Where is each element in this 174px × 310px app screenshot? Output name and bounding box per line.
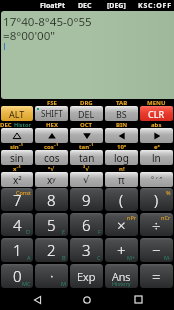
staticText: 17°40-8°45-0°55 [3,14,92,30]
button[interactable]: ÷ [140,213,173,236]
button[interactable]: + [105,238,138,262]
button[interactable]: Ans [105,264,138,288]
staticText: M+ [127,254,136,261]
staticText: 7 [13,190,22,210]
staticText: √ [83,174,90,186]
staticText: 1 [13,240,22,260]
button[interactable]: Exp [70,264,103,288]
staticText: C [97,254,101,261]
staticText: cos [44,151,60,165]
staticText: E [62,228,66,235]
button[interactable]: xʸ [35,172,68,187]
button[interactable]: Move left [105,128,138,143]
button[interactable]: 6 [70,213,103,236]
staticText: % [166,189,171,196]
button[interactable]: 8 [35,188,68,211]
button[interactable]: 7 [1,188,33,211]
button[interactable]: π [105,172,138,187]
button[interactable]: Cursor up [1,128,33,143]
staticText: + [117,240,126,260]
button[interactable]: cos [35,150,68,165]
staticText: 5 [47,215,56,235]
staticText: n! [119,165,125,172]
staticText: KSC:OFF [138,1,172,11]
staticText: M [61,280,66,287]
staticText: BS [116,108,127,120]
button[interactable]: ° ′ ″ [140,172,173,187]
staticText: 4 [13,215,22,235]
staticText: 0 [13,266,22,286]
button[interactable]: 2 [35,238,68,262]
button[interactable]: 4 [1,213,33,236]
staticText: tan [79,151,95,165]
button[interactable]: log [105,150,138,165]
staticText: x² [13,173,22,187]
button[interactable]: ALT [1,106,33,121]
staticText: 3 [82,240,91,260]
staticText: HEX [46,121,58,128]
staticText: MC [22,280,31,287]
staticText: ° ′ ″ [151,175,163,185]
staticText: xʸ [47,173,56,187]
button[interactable]: sin [1,150,33,165]
button[interactable]: ln [140,150,173,165]
button[interactable]: Home [73,289,101,310]
staticText: ( [119,190,124,210]
staticText: = [152,266,161,286]
staticText: DEC [0,121,12,128]
staticText: SHIFT [41,108,63,119]
button[interactable]: 0 [1,264,33,288]
button[interactable]: 3 [70,238,103,262]
staticText: 10ˣ [117,143,127,150]
staticText: 2 [47,240,56,260]
staticText: TAB [116,99,128,106]
staticText: D [26,228,31,235]
button[interactable]: Recent apps [124,289,152,310]
staticText: − [152,240,161,260]
staticText: History [112,280,131,287]
staticText: A [27,254,31,261]
button[interactable]: SHIFT [35,106,68,121]
staticText: DEL [78,108,95,120]
button[interactable]: − [140,238,173,262]
staticText: ³√ [83,165,90,172]
staticText: F [98,228,101,235]
button[interactable]: ) [140,188,173,211]
staticText: B [62,254,66,261]
staticText: nPr [127,214,136,221]
button[interactable]: × [105,213,138,236]
staticText: × [117,215,126,235]
button[interactable]: CLR [140,106,173,121]
staticText: ) [154,190,159,210]
staticText: sin [10,151,24,165]
staticText: ln [152,151,161,165]
button[interactable]: DEL [70,106,103,121]
staticText: CLR [148,108,165,120]
button[interactable]: Back [23,289,51,310]
staticText: Ans [112,269,131,284]
staticText: sin⁻¹ [10,143,24,150]
staticText: History [14,121,34,128]
button[interactable]: 1 [1,238,33,262]
staticText: abs [151,121,162,128]
button[interactable]: Scroll up [35,128,68,143]
button[interactable]: Scroll down [70,128,103,143]
staticText: Const [16,189,31,196]
button[interactable]: 9 [70,188,103,211]
button[interactable]: BS [105,106,138,121]
staticText: ÷ [152,215,161,235]
staticText: BIN [116,121,128,128]
staticText: FloatPt [40,1,65,11]
staticText: DEC [78,1,92,11]
staticText: tan⁻¹ [79,143,94,150]
button[interactable]: = [140,264,173,288]
button[interactable]: · [35,264,68,288]
button[interactable]: x² [1,172,33,187]
staticText: eˣ [154,143,160,150]
button[interactable]: tan [70,150,103,165]
button[interactable]: Move right [140,128,173,143]
button[interactable]: ( [105,188,138,211]
button[interactable]: √ [70,172,103,187]
button[interactable]: 5 [35,213,68,236]
staticText: MENU [147,99,166,106]
